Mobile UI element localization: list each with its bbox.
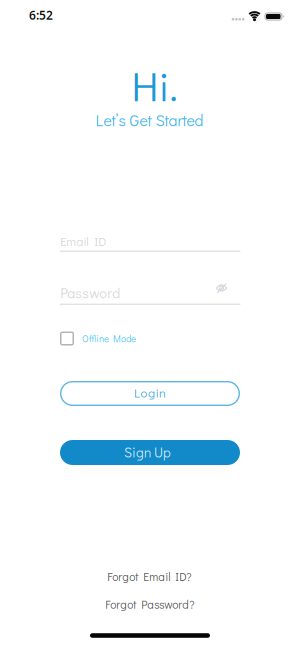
staticText: Let’s Get Started (95, 110, 203, 130)
button[interactable]: Offline Mode (60, 329, 241, 347)
button[interactable]: Sign Up (60, 440, 240, 465)
staticText: Login (134, 384, 166, 401)
staticText: Offline Mode (82, 332, 136, 345)
button[interactable]: Show password (213, 280, 229, 296)
button[interactable]: Email ID (59, 236, 240, 254)
staticText: Hi. (131, 59, 177, 112)
staticText: Password (60, 283, 120, 302)
button[interactable]: Password (59, 288, 240, 306)
button[interactable]: Forgot Email ID? (107, 569, 191, 584)
staticText: Forgot Password? (105, 597, 194, 612)
button[interactable]: Login (60, 381, 240, 406)
staticText: Email ID (60, 233, 106, 249)
staticText: Sign Up (124, 443, 171, 461)
staticText: 6:52 (29, 7, 53, 23)
button[interactable]: Forgot Password? (105, 597, 194, 612)
staticText: Forgot Email ID? (107, 569, 191, 584)
